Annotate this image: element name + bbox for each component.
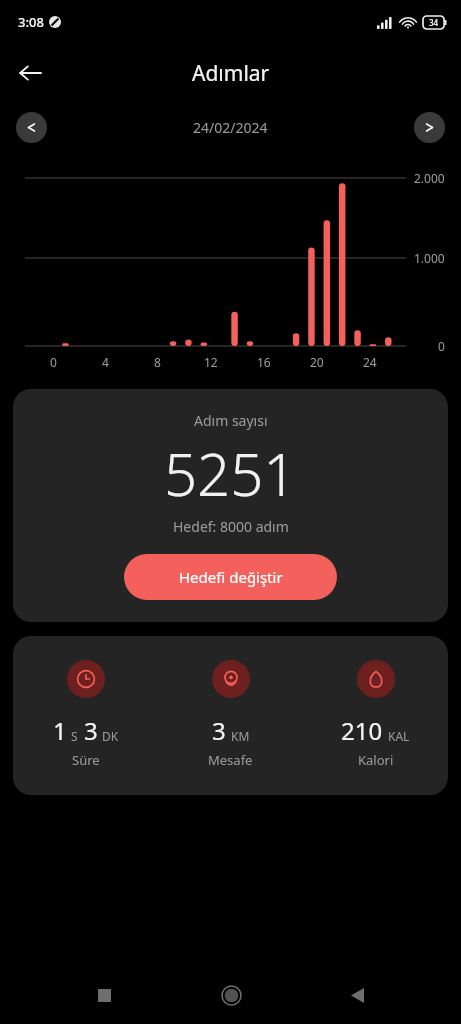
staticText: Mesafe xyxy=(208,751,253,769)
staticText: 1.000 xyxy=(414,250,445,266)
button[interactable]: Previous day xyxy=(16,112,47,143)
staticText: S xyxy=(71,728,78,744)
staticText: 1 xyxy=(53,714,67,747)
staticText: 3 xyxy=(84,714,98,747)
staticText: 4 xyxy=(102,354,109,370)
staticText: 34 xyxy=(429,17,439,28)
staticText: 0 xyxy=(50,354,57,370)
staticText: 3 xyxy=(212,714,226,747)
staticText: Kalori xyxy=(358,751,394,769)
staticText: 0 xyxy=(438,338,445,354)
staticText: Süre xyxy=(72,751,100,769)
staticText: Adım sayısı xyxy=(194,411,268,430)
staticText: 5251 xyxy=(164,434,297,513)
button[interactable]: Next day xyxy=(414,112,445,143)
staticText: 2.000 xyxy=(414,170,445,186)
button[interactable]: Back xyxy=(334,972,380,1018)
staticText: 24/02/2024 xyxy=(193,118,268,137)
button[interactable]: Hedefi değiştir xyxy=(124,554,337,600)
button[interactable]: 3 xyxy=(158,660,303,769)
staticText: 3:08 xyxy=(18,13,44,31)
staticText: KM xyxy=(231,728,250,744)
staticText: DK xyxy=(102,728,119,744)
staticText: 8 xyxy=(154,354,161,370)
button[interactable]: Recent apps xyxy=(81,972,127,1018)
staticText: Hedef: 8000 adım xyxy=(173,517,289,536)
button[interactable]: Back xyxy=(8,51,52,95)
staticText: 24 xyxy=(363,354,377,370)
button[interactable]: Home xyxy=(208,972,254,1018)
staticText: 210 xyxy=(341,714,383,747)
staticText: KAL xyxy=(388,728,410,744)
button[interactable]: Adım sayısı xyxy=(13,389,448,622)
button[interactable]: 1 xyxy=(13,660,158,769)
staticText: Hedefi değiştir xyxy=(179,567,283,587)
staticText: Adımlar xyxy=(192,59,270,88)
staticText: 12 xyxy=(204,354,218,370)
staticText: 20 xyxy=(310,354,324,370)
button[interactable]: 210 xyxy=(303,660,448,769)
staticText: 16 xyxy=(257,354,271,370)
